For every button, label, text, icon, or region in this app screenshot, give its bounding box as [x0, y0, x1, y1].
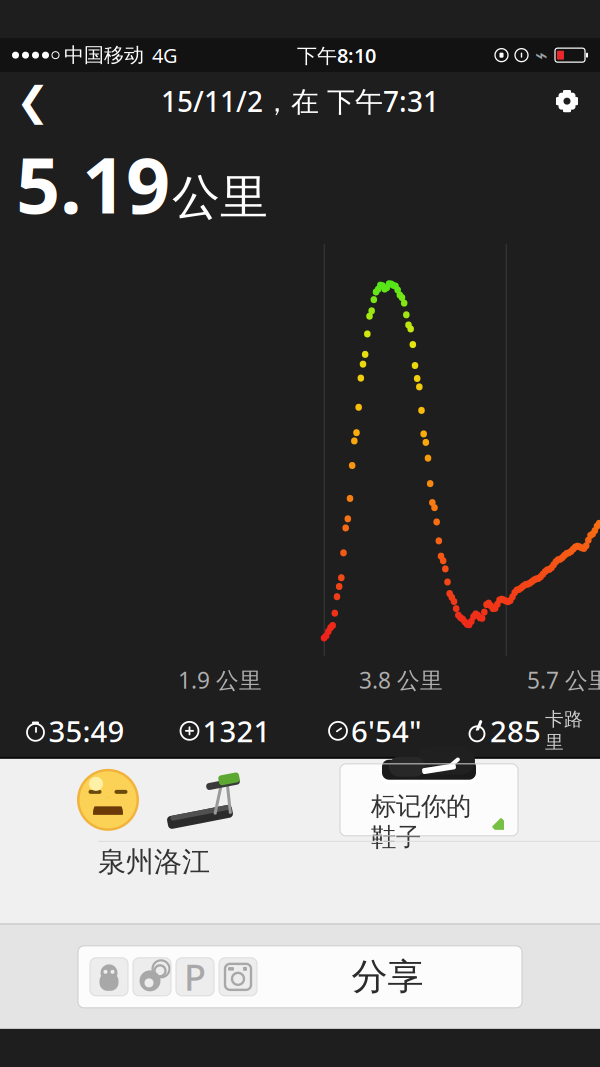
staticText: P	[184, 953, 206, 1001]
button[interactable]: Back	[6, 74, 60, 128]
staticText: 6'54"	[351, 711, 422, 750]
button[interactable]: 分享	[257, 946, 518, 1008]
staticText: 下午8:10	[297, 42, 376, 68]
staticText: 标记你的鞋子	[371, 791, 471, 853]
staticText: 4G	[152, 42, 178, 68]
staticText: 3.8 公里	[359, 665, 443, 695]
staticText: 35:49	[48, 711, 124, 750]
staticText: 5.7 公里	[527, 665, 600, 695]
button[interactable]: 标记你的鞋子	[340, 764, 518, 836]
staticText: ❮	[16, 78, 50, 124]
staticText: 15/11/2，在 下午7:31	[161, 83, 439, 120]
staticText: 285	[490, 711, 541, 750]
staticText: ⌁	[535, 43, 548, 67]
staticText: 分享	[351, 955, 423, 999]
button[interactable]: Instagram	[219, 958, 257, 996]
button[interactable]: Path	[176, 958, 214, 996]
staticText: 1.9 公里	[178, 665, 262, 695]
staticText: 公里	[172, 168, 268, 227]
button[interactable]: Mood	[60, 762, 156, 838]
button[interactable]: 微博	[133, 958, 171, 996]
button[interactable]: Terrain	[156, 762, 252, 838]
button[interactable]: QQ	[90, 958, 128, 996]
staticText: 1321	[202, 711, 270, 750]
staticText: 中国移动	[64, 43, 144, 67]
staticText: 5.19	[16, 132, 170, 235]
staticText: 卡路里	[545, 708, 583, 754]
staticText: 泉州洛江	[98, 845, 210, 879]
button[interactable]: Settings	[540, 74, 594, 128]
